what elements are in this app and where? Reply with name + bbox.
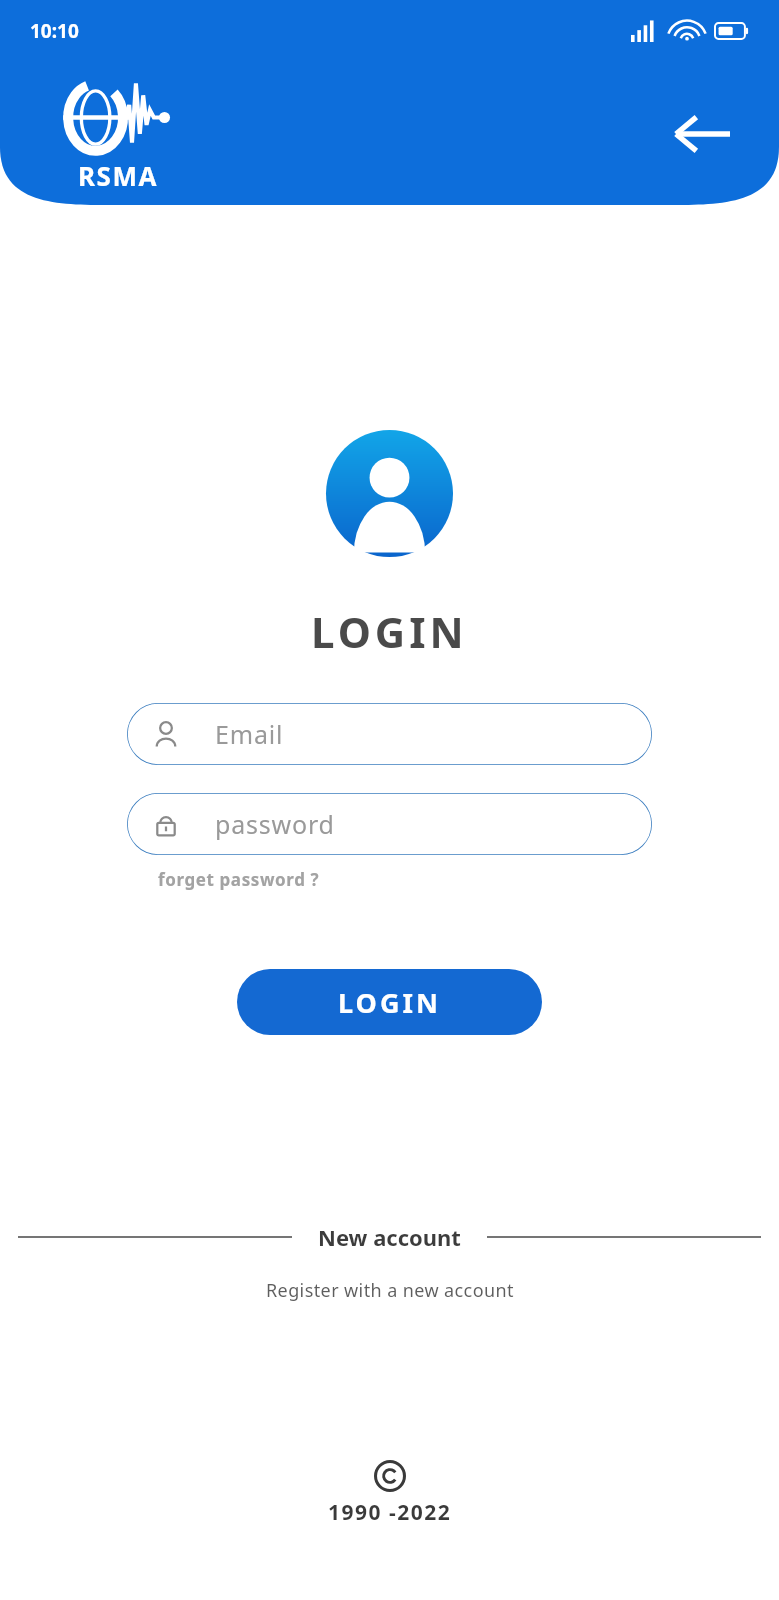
button[interactable]: LOGIN [237, 969, 542, 1035]
button[interactable]: forget password ? [158, 868, 320, 891]
staticText: LOGIN [311, 603, 468, 660]
staticText: LOGIN [338, 984, 441, 1021]
staticText: Email [215, 717, 284, 751]
button[interactable]: password [127, 793, 652, 855]
staticText: 10:10 [30, 18, 79, 44]
staticText: New account [318, 1222, 461, 1252]
button[interactable]: Back [669, 108, 733, 160]
button[interactable]: Email [127, 703, 652, 765]
staticText: forget password ? [158, 868, 320, 891]
button[interactable]: New account [318, 1222, 461, 1252]
staticText: 1990 -2022 [328, 1498, 452, 1527]
staticText: password [215, 807, 335, 841]
staticText: Register with a new account [266, 1278, 514, 1303]
staticText: RSMA [78, 158, 158, 193]
button[interactable]: Register with a new account [266, 1278, 514, 1303]
